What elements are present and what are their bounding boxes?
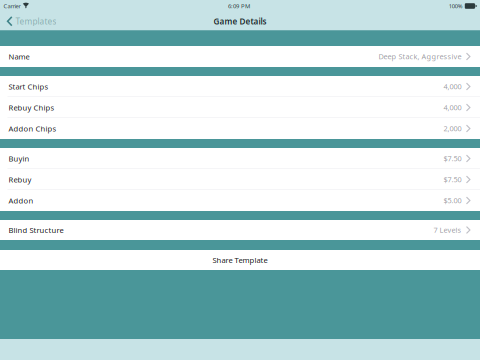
staticText: 6:09 PM [228, 2, 250, 10]
button[interactable]: Blind Structure [0, 220, 480, 240]
staticText: Name [9, 51, 30, 62]
button[interactable]: Rebuy [0, 169, 480, 190]
staticText: Carrier [3, 2, 20, 10]
staticText: Rebuy Chips [9, 102, 55, 113]
staticText: $7.50 [443, 153, 461, 163]
button[interactable]: Share Template [0, 250, 480, 270]
staticText: Deep Stack, Aggressive [378, 51, 461, 61]
staticText: Share Template [212, 255, 267, 265]
staticText: $7.50 [443, 174, 461, 184]
staticText: 4,000 [443, 102, 461, 112]
button[interactable]: Name [0, 46, 480, 67]
button[interactable]: Templates [0, 14, 56, 29]
button[interactable]: Start Chips [0, 76, 480, 97]
staticText: Addon Chips [9, 123, 57, 134]
staticText: Rebuy [9, 174, 32, 185]
staticText: Blind Structure [9, 225, 64, 235]
staticText: Game Details [213, 16, 266, 27]
staticText: 100% [449, 2, 463, 10]
staticText: 2,000 [443, 123, 461, 133]
staticText: Templates [15, 16, 56, 27]
staticText: 7 Levels [433, 225, 461, 235]
staticText: Start Chips [9, 81, 49, 92]
button[interactable]: Addon [0, 190, 480, 211]
button[interactable]: Buyin [0, 148, 480, 169]
staticText: Addon [9, 195, 34, 206]
staticText: $5.00 [443, 195, 461, 205]
button[interactable]: Rebuy Chips [0, 97, 480, 118]
staticText: Buyin [9, 153, 30, 164]
button[interactable]: Addon Chips [0, 118, 480, 139]
staticText: 4,000 [443, 81, 461, 91]
